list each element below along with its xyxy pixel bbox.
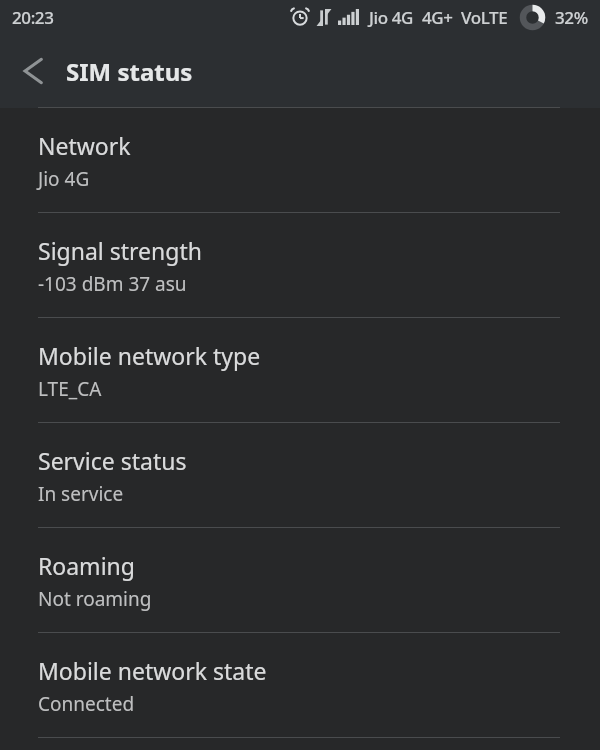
staticText: Connected	[38, 691, 135, 717]
staticText: Network	[38, 130, 131, 161]
button[interactable]: Signal strength	[0, 213, 600, 318]
staticText: VoLTE	[461, 6, 508, 29]
staticText: Mobile network state	[38, 655, 267, 686]
staticText: 20:23	[12, 6, 54, 29]
button[interactable]: Service status	[0, 423, 600, 528]
button[interactable]: Roaming	[0, 528, 600, 633]
staticText: In service	[38, 481, 124, 507]
staticText: Jio 4G	[38, 166, 90, 192]
button[interactable]: Mobile network state	[0, 633, 600, 738]
staticText: 4G+	[422, 6, 453, 29]
staticText: LTE_CA	[38, 376, 102, 402]
button[interactable]: Network	[0, 108, 600, 213]
staticText: 32%	[555, 6, 588, 29]
staticText: Signal strength	[38, 235, 202, 266]
button[interactable]: Mobile network type	[0, 318, 600, 423]
staticText: Not roaming	[38, 586, 152, 612]
staticText: -103 dBm 37 asu	[38, 271, 187, 297]
staticText: Mobile network type	[38, 340, 261, 371]
staticText: SIM status	[66, 55, 193, 88]
staticText: Roaming	[38, 550, 135, 581]
button[interactable]	[23, 58, 43, 84]
staticText: Service status	[38, 445, 187, 476]
staticText: Jio 4G	[369, 6, 414, 29]
